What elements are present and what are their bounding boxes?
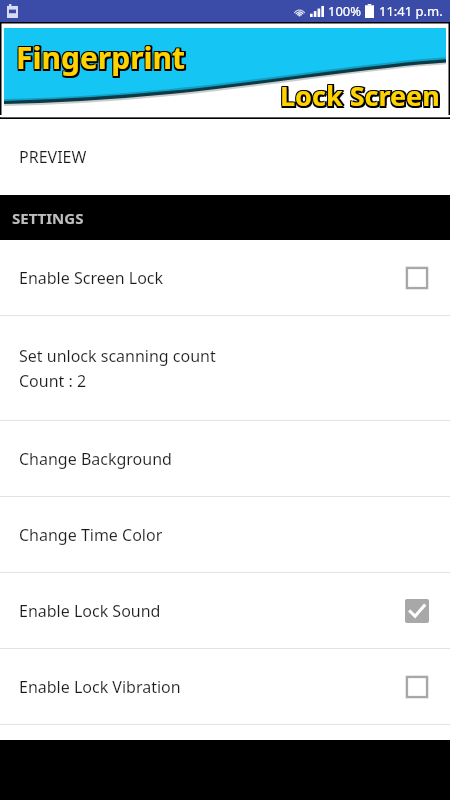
staticText: SETTINGS	[12, 208, 84, 228]
button[interactable]: Change Time Color	[0, 497, 450, 572]
other: Checked	[404, 598, 430, 624]
staticText: Lock Screen	[282, 77, 442, 114]
staticText: Count : 2	[19, 370, 87, 392]
staticText: Change Time Color	[19, 524, 163, 546]
staticText: Fingerprint	[16, 37, 186, 78]
staticText: Change Background	[19, 448, 172, 470]
button[interactable]: Change Background	[0, 421, 450, 496]
staticText: Lock Screen	[279, 77, 439, 114]
staticText: Lock Screen	[280, 77, 440, 114]
other: Unchecked	[404, 265, 430, 291]
staticText: Set unlock scanning count	[19, 345, 216, 367]
staticText: Lock Screen	[282, 79, 442, 116]
other: Unchecked	[404, 674, 430, 700]
staticText: Fingerprint	[15, 39, 185, 80]
staticText: Enable Lock Vibration	[19, 676, 181, 698]
staticText: PREVIEW	[19, 146, 87, 168]
button[interactable]: Enable Lock Vibration	[0, 649, 450, 724]
staticText: Fingerprint	[16, 36, 186, 77]
staticText: Enable Lock Sound	[19, 600, 161, 622]
staticText: Fingerprint	[18, 37, 188, 78]
staticText: Lock Screen	[282, 76, 442, 113]
staticText: Lock Screen	[279, 79, 439, 116]
button[interactable]: Enable Lock Sound	[0, 573, 450, 648]
staticText: Fingerprint	[18, 36, 188, 77]
staticText: Lock Screen	[280, 79, 440, 116]
staticText: Enable Screen Lock	[19, 267, 164, 289]
button[interactable]: Set unlock scanning count	[0, 316, 450, 420]
staticText: Fingerprint	[16, 39, 186, 80]
staticText: Lock Screen	[279, 76, 439, 113]
staticText: 100%	[328, 2, 362, 20]
staticText: Fingerprint	[18, 39, 188, 80]
button[interactable]: PREVIEW	[0, 119, 450, 195]
staticText: 11:41 p.m.	[379, 2, 443, 20]
staticText: Fingerprint	[15, 37, 185, 78]
staticText: Fingerprint	[15, 36, 185, 77]
button[interactable]: Enable Screen Lock	[0, 240, 450, 315]
staticText: Lock Screen	[280, 76, 440, 113]
